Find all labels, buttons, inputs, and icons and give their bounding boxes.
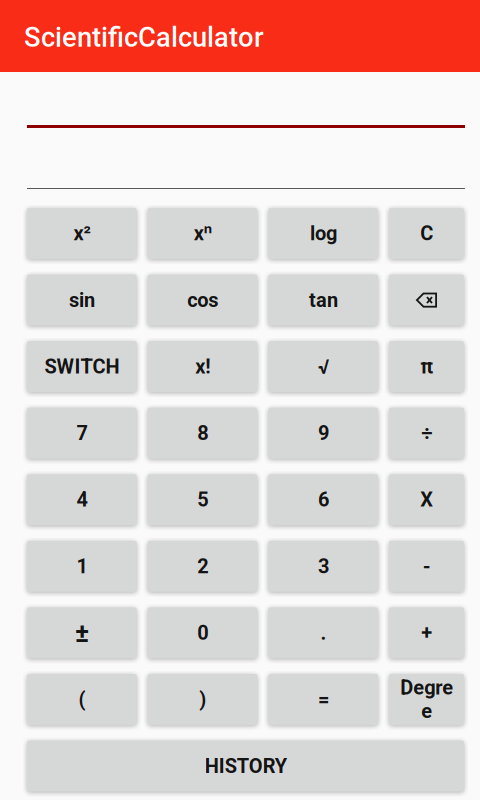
button[interactable]: cos (148, 275, 257, 326)
button[interactable]: Degre e (389, 674, 464, 725)
staticText: x! (195, 355, 210, 378)
staticText: X (420, 488, 433, 511)
staticText: 9 (318, 421, 329, 445)
staticText: log (310, 222, 337, 245)
staticText: 5 (197, 488, 208, 511)
staticText: 0 (197, 621, 208, 645)
staticText: 6 (318, 488, 329, 511)
staticText: 8 (197, 421, 208, 445)
button[interactable]: x² (27, 208, 137, 259)
button[interactable]: Backspace (389, 275, 464, 326)
button[interactable]: X (389, 474, 464, 525)
button[interactable]: 5 (148, 474, 257, 525)
button[interactable]: = (268, 674, 378, 725)
button[interactable]: ( (27, 674, 137, 725)
button[interactable]: + (389, 607, 464, 658)
staticText: 2 (197, 555, 208, 578)
staticText: = (318, 688, 329, 711)
button[interactable]: 2 (148, 541, 257, 592)
staticText: . (320, 621, 326, 645)
button[interactable]: 8 (148, 408, 257, 459)
staticText: xⁿ (193, 222, 211, 245)
staticText: + (421, 621, 432, 645)
staticText: HISTORY (204, 754, 286, 778)
button[interactable]: 1 (27, 541, 137, 592)
button[interactable]: xⁿ (148, 208, 257, 259)
staticText: tan (309, 288, 338, 312)
staticText: - (422, 555, 430, 578)
button[interactable]: log (268, 208, 378, 259)
staticText: ) (199, 688, 206, 711)
button[interactable]: C (389, 208, 464, 259)
button[interactable]: 4 (27, 474, 137, 525)
staticText: 1 (76, 555, 87, 578)
button[interactable]: 9 (268, 408, 378, 459)
button[interactable]: ) (148, 674, 257, 725)
staticText: 7 (76, 421, 87, 445)
button[interactable]: - (389, 541, 464, 592)
button[interactable]: HISTORY (27, 741, 464, 792)
staticText: π (420, 355, 433, 378)
staticText: sin (69, 288, 95, 312)
button[interactable]: ± (27, 607, 137, 658)
button[interactable]: 7 (27, 408, 137, 459)
staticText: 3 (318, 555, 329, 578)
button[interactable]: 0 (148, 607, 257, 658)
button[interactable]: ÷ (389, 408, 464, 459)
staticText: cos (187, 288, 218, 312)
button[interactable]: . (268, 607, 378, 658)
staticText: x² (73, 222, 90, 245)
staticText: √ (318, 355, 329, 378)
button[interactable]: x! (148, 341, 257, 392)
button[interactable]: sin (27, 275, 137, 326)
button[interactable]: tan (268, 275, 378, 326)
button[interactable]: π (389, 341, 464, 392)
staticText: Degre e (400, 676, 453, 723)
staticText: 4 (76, 488, 87, 511)
staticText: ScientificCalculator (24, 21, 264, 53)
button[interactable]: √ (268, 341, 378, 392)
button[interactable]: 3 (268, 541, 378, 592)
staticText: C (420, 222, 433, 245)
staticText: ± (75, 617, 89, 649)
button[interactable]: SWITCH (27, 341, 137, 392)
staticText: ( (78, 688, 85, 711)
button[interactable]: 6 (268, 474, 378, 525)
staticText: SWITCH (44, 355, 119, 378)
staticText: ÷ (421, 421, 432, 445)
